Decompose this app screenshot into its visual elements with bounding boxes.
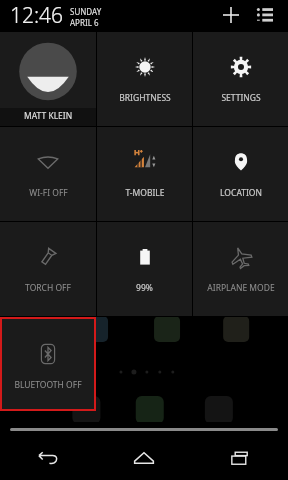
staticText: BRIGHTNESS: [119, 92, 171, 104]
staticText: BLUETOOTH OFF: [14, 379, 82, 391]
staticText: 99%: [136, 282, 153, 294]
staticText: LOCATION: [220, 187, 262, 199]
button[interactable]: Home: [96, 436, 192, 480]
button[interactable]: Recent apps: [192, 436, 288, 480]
staticText: AIRPLANE MODE: [207, 282, 275, 294]
button[interactable]: LOCATION: [193, 127, 288, 221]
button[interactable]: MATT KLEIN: [0, 32, 96, 126]
staticText: 12:46: [10, 1, 64, 30]
button[interactable]: Back: [0, 436, 96, 480]
button[interactable]: AIRPLANE MODE: [193, 222, 288, 316]
button[interactable]: Quick settings list: [250, 0, 280, 30]
button[interactable]: Add user: [216, 0, 246, 30]
staticText: SUNDAY: [70, 6, 102, 17]
staticText: WI-FI OFF: [29, 187, 68, 199]
staticText: SETTINGS: [221, 92, 261, 104]
button[interactable]: WI-FI OFF: [0, 127, 96, 221]
button[interactable]: 99%: [97, 222, 192, 316]
button[interactable]: TORCH OFF: [0, 222, 96, 316]
button[interactable]: BLUETOOTH OFF: [0, 317, 96, 411]
staticText: T-MOBILE: [125, 187, 165, 199]
button[interactable]: SETTINGS: [193, 32, 288, 126]
staticText: APRIL 6: [70, 17, 99, 28]
button[interactable]: T-MOBILE: [97, 127, 192, 221]
staticText: TORCH OFF: [25, 282, 71, 294]
button[interactable]: BRIGHTNESS: [97, 32, 192, 126]
staticText: MATT KLEIN: [24, 110, 73, 122]
